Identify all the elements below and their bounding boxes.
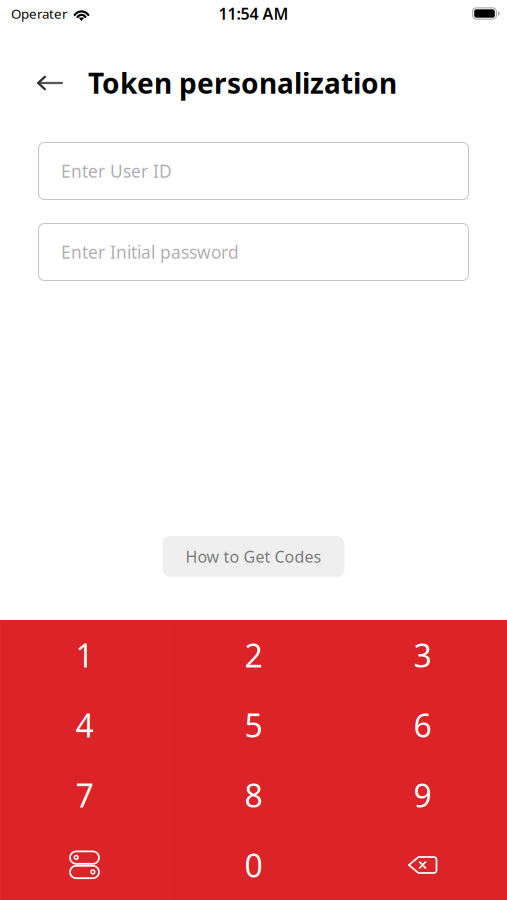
- staticText: 8: [244, 774, 262, 816]
- staticText: 3: [413, 634, 431, 676]
- button[interactable]: 3: [338, 620, 507, 690]
- staticText: Token personalization: [88, 64, 397, 102]
- staticText: 2: [244, 634, 262, 676]
- staticText: 1: [75, 634, 93, 676]
- staticText: 0: [244, 844, 262, 886]
- button[interactable]: 8: [169, 760, 338, 830]
- staticText: How to Get Codes: [185, 546, 321, 567]
- button[interactable]: 6: [338, 690, 507, 760]
- button[interactable]: 7: [0, 760, 169, 830]
- button[interactable]: 2: [169, 620, 338, 690]
- staticText: Operater: [11, 5, 68, 22]
- staticText: Enter User ID: [61, 159, 172, 182]
- button[interactable]: 4: [0, 690, 169, 760]
- staticText: Enter Initial password: [61, 240, 239, 263]
- button[interactable]: Delete: [338, 830, 507, 900]
- staticText: 6: [413, 704, 431, 746]
- staticText: 9: [413, 774, 431, 816]
- button[interactable]: 9: [338, 760, 507, 830]
- button[interactable]: 5: [169, 690, 338, 760]
- staticText: 7: [75, 774, 93, 816]
- button[interactable]: Back: [24, 57, 76, 109]
- button[interactable]: 0: [169, 830, 338, 900]
- button[interactable]: 1: [0, 620, 169, 690]
- staticText: 5: [244, 704, 262, 746]
- staticText: 4: [75, 704, 93, 746]
- button[interactable]: Switch input mode: [0, 830, 169, 900]
- button[interactable]: How to Get Codes: [162, 536, 344, 577]
- staticText: 11:54 AM: [218, 3, 288, 24]
